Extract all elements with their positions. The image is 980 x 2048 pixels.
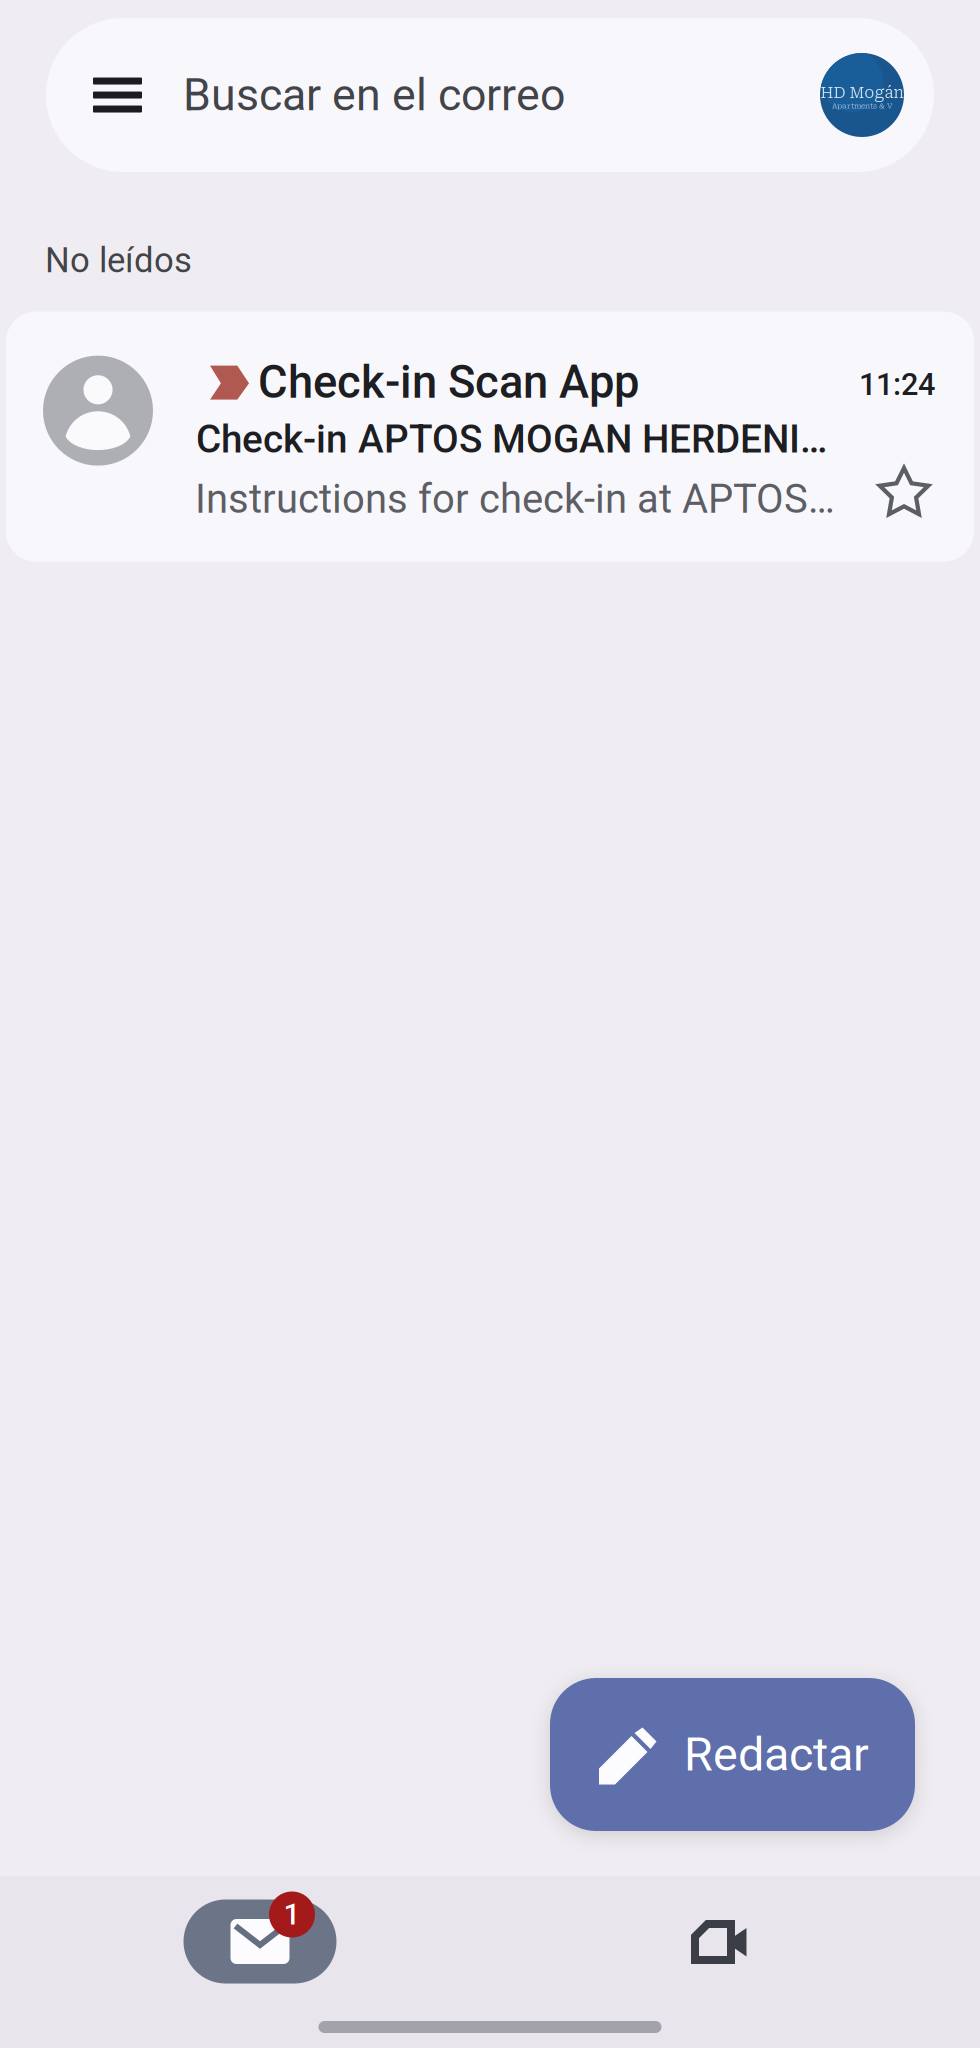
- staticText: 11:24: [859, 367, 935, 402]
- staticText: Check-in APTOS MOGAN HERDENI…: [196, 417, 827, 462]
- button[interactable]: Redactar: [550, 1678, 915, 1831]
- button[interactable]: Check-in Scan App: [6, 312, 974, 562]
- staticText: Apartments & V: [832, 102, 892, 110]
- staticText: HD Mogán: [820, 84, 903, 102]
- staticText: 1: [283, 1897, 300, 1932]
- button[interactable]: Buscar en el correo: [46, 18, 934, 172]
- staticText: Instructions for check-in at APTOS…: [195, 476, 835, 522]
- staticText: No leídos: [45, 240, 192, 281]
- button[interactable]: Reunirse: [603, 1891, 833, 1991]
- staticText: Buscar en el correo: [183, 69, 565, 121]
- staticText: Redactar: [684, 1727, 869, 1782]
- staticText: Check-in Scan App: [258, 356, 639, 409]
- button[interactable]: Correo: [145, 1891, 375, 1991]
